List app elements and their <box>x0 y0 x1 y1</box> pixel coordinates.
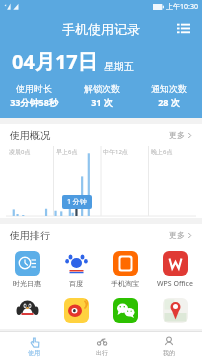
button[interactable]: 使用 <box>0 332 68 359</box>
staticText: WPS Office <box>157 279 193 289</box>
staticText: 手机使用记录 <box>62 21 140 37</box>
button[interactable] <box>2 295 51 325</box>
staticText: 上午10:30 <box>166 2 198 12</box>
button[interactable]: WPS Office <box>150 248 200 291</box>
staticText: 31 次 <box>91 96 113 108</box>
staticText: 晚上6点 <box>151 148 173 156</box>
staticText: 中午12点 <box>103 148 128 156</box>
button[interactable]: 我的 <box>135 332 202 359</box>
staticText: 星期五 <box>104 60 134 73</box>
staticText: 更多 <box>169 130 185 140</box>
staticText: 使用排行 <box>10 229 50 242</box>
staticText: 早上6点 <box>56 148 78 156</box>
button[interactable]: 更多 <box>169 130 192 140</box>
staticText: 04月17日 <box>12 48 98 75</box>
staticText: 使用概况 <box>10 129 50 142</box>
staticText: 更多 <box>169 230 185 240</box>
button[interactable] <box>150 295 200 325</box>
button[interactable]: 时光日惠 <box>2 248 51 290</box>
staticText: 手机淘宝 <box>111 279 139 288</box>
button[interactable]: 菜单 <box>172 18 194 40</box>
staticText: 使用 <box>28 349 40 357</box>
staticText: 时光日惠 <box>13 279 41 288</box>
button[interactable]: 手机淘宝 <box>100 248 150 290</box>
button[interactable] <box>51 295 100 325</box>
button[interactable]: 出行 <box>68 332 135 359</box>
button[interactable]: 更多 <box>169 230 192 240</box>
staticText: 33分钟58秒 <box>10 96 58 108</box>
staticText: 1 分钟 <box>67 197 87 207</box>
staticText: 我的 <box>163 349 175 357</box>
staticText: 百度 <box>69 279 83 288</box>
staticText: 28 次 <box>158 96 180 108</box>
staticText: 解锁次数 <box>84 83 120 94</box>
staticText: 凌晨0点 <box>9 148 31 156</box>
button[interactable] <box>100 295 150 325</box>
staticText: 出行 <box>96 349 108 357</box>
staticText: 使用时长 <box>16 83 52 94</box>
button[interactable]: 百度 <box>51 248 100 290</box>
staticText: 通知次数 <box>151 83 187 94</box>
button[interactable]: 凌晨0点 <box>6 146 196 218</box>
